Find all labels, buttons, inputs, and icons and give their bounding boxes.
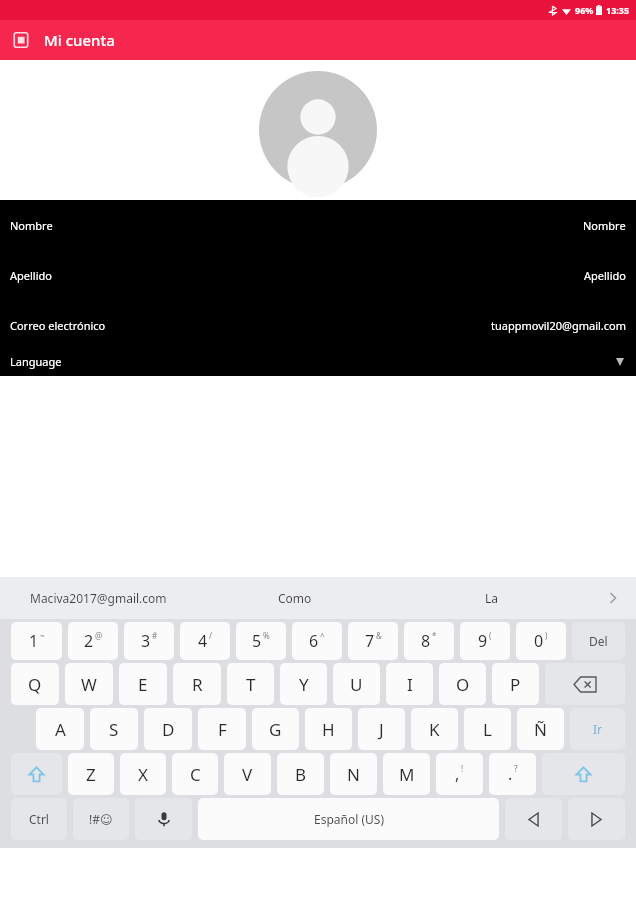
button[interactable]: Correo electrónico <box>0 300 636 350</box>
button[interactable]: E <box>119 663 167 705</box>
staticText: G <box>269 718 282 741</box>
other: Shift <box>575 766 592 783</box>
button[interactable]: C <box>172 753 218 795</box>
button[interactable]: T <box>227 663 274 705</box>
button[interactable]: Q <box>11 663 59 705</box>
button[interactable]: , <box>436 753 483 795</box>
staticText: Correo electrónico <box>10 318 106 333</box>
button[interactable]: Voice input <box>135 798 192 840</box>
button[interactable]: Español (US) <box>198 798 499 840</box>
button[interactable]: Maciva2017@gmail.com <box>0 577 196 619</box>
other: Cursor right <box>590 813 603 826</box>
staticText: ( <box>489 630 492 641</box>
other: Cursor left <box>527 813 540 826</box>
staticText: M <box>399 763 415 786</box>
staticText: N <box>347 763 360 786</box>
button[interactable]: 7 <box>348 622 398 660</box>
staticText: 13:35 <box>606 4 630 16</box>
staticText: U <box>350 673 363 696</box>
staticText: Q <box>28 673 42 696</box>
button[interactable]: Shift <box>542 753 625 795</box>
button[interactable]: Shift <box>11 753 62 795</box>
staticText: Y <box>299 673 309 696</box>
button[interactable]: H <box>305 708 352 750</box>
button[interactable]: R <box>173 663 221 705</box>
button[interactable]: 1 <box>11 622 62 660</box>
button[interactable]: La <box>393 577 590 619</box>
button[interactable]: D <box>144 708 192 750</box>
button[interactable]: 0 <box>516 622 566 660</box>
button[interactable]: Del <box>572 622 625 660</box>
button[interactable]: S <box>90 708 138 750</box>
staticText: L <box>483 718 492 741</box>
staticText: X <box>138 763 148 786</box>
button[interactable]: X <box>120 753 166 795</box>
button[interactable]: W <box>65 663 113 705</box>
button[interactable]: Language <box>0 350 636 376</box>
button[interactable]: J <box>358 708 405 750</box>
button[interactable]: B <box>277 753 324 795</box>
button[interactable]: !#☺ <box>73 798 129 840</box>
staticText: 9 <box>478 630 488 652</box>
button[interactable]: N <box>330 753 377 795</box>
button[interactable]: 4 <box>180 622 230 660</box>
button[interactable]: 2 <box>68 622 118 660</box>
button[interactable]: Como <box>196 577 393 619</box>
staticText: S <box>109 718 119 741</box>
button[interactable]: Ir <box>570 708 625 750</box>
button[interactable]: Ctrl <box>11 798 67 840</box>
staticText: 7 <box>365 630 375 652</box>
button[interactable]: Ñ <box>517 708 564 750</box>
staticText: A <box>55 718 66 741</box>
staticText: J <box>379 718 384 741</box>
staticText: ! <box>461 763 464 774</box>
button[interactable]: P <box>492 663 539 705</box>
other: Voice input <box>155 810 173 828</box>
staticText: F <box>218 718 227 741</box>
staticText: , <box>455 763 460 785</box>
staticText: La <box>485 590 499 606</box>
staticText: P <box>510 673 521 696</box>
button[interactable]: U <box>333 663 380 705</box>
button[interactable]: 3 <box>124 622 174 660</box>
button[interactable]: F <box>198 708 246 750</box>
staticText: E <box>138 673 148 696</box>
button[interactable]: Y <box>280 663 327 705</box>
button[interactable]: M <box>383 753 430 795</box>
button[interactable]: A <box>36 708 84 750</box>
button[interactable]: Backspace <box>545 663 625 705</box>
button[interactable]: L <box>464 708 511 750</box>
other: Shift <box>28 766 45 783</box>
button[interactable]: Apellido <box>0 250 636 300</box>
button[interactable]: 9 <box>460 622 510 660</box>
button[interactable]: Navigation <box>10 29 32 51</box>
button[interactable]: 6 <box>292 622 342 660</box>
staticText: Ctrl <box>29 811 49 827</box>
button[interactable]: Cursor left <box>505 798 562 840</box>
staticText: Del <box>589 633 608 649</box>
staticText: ^ <box>320 630 325 641</box>
staticText: @ <box>95 630 103 641</box>
button[interactable]: . <box>489 753 536 795</box>
button[interactable]: 8 <box>404 622 454 660</box>
button[interactable]: 5 <box>236 622 286 660</box>
staticText: / <box>209 630 212 641</box>
button[interactable]: K <box>411 708 458 750</box>
staticText: Nombre <box>583 218 626 233</box>
button[interactable]: G <box>252 708 299 750</box>
button[interactable]: Z <box>68 753 114 795</box>
staticText: 2 <box>84 630 94 652</box>
staticText: W <box>81 673 97 696</box>
staticText: ? <box>514 763 518 774</box>
staticText: . <box>508 763 513 785</box>
button[interactable]: O <box>439 663 486 705</box>
button[interactable]: I <box>386 663 433 705</box>
button[interactable]: Cursor right <box>568 798 625 840</box>
staticText: B <box>295 763 307 786</box>
staticText: 3 <box>141 630 151 652</box>
staticText: Mi cuenta <box>44 30 115 50</box>
button[interactable]: More suggestions <box>590 577 636 619</box>
staticText: !#☺ <box>89 811 113 827</box>
button[interactable]: V <box>224 753 271 795</box>
button[interactable]: Nombre <box>0 200 636 250</box>
